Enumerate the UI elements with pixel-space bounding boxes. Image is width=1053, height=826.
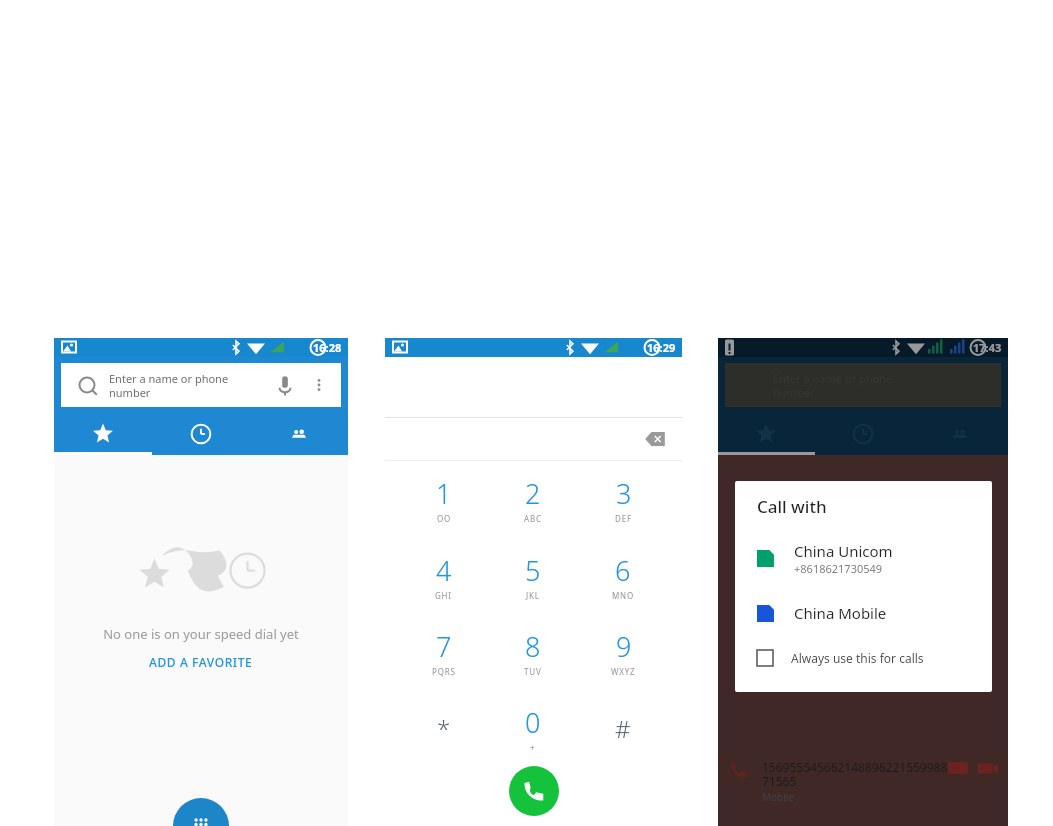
staticText: 8	[525, 628, 541, 665]
staticText: ΟO	[437, 513, 452, 524]
staticText: ADD A FAVORITE	[149, 654, 253, 670]
staticText: TUV	[524, 666, 542, 677]
staticText: ABC	[524, 513, 542, 524]
button[interactable]: 7	[399, 614, 488, 690]
button[interactable]: Contacts	[250, 413, 348, 455]
staticText: 2	[525, 475, 541, 512]
staticText: GHI	[435, 590, 452, 601]
staticText: Call with	[757, 495, 827, 518]
button[interactable]: 6	[578, 538, 668, 614]
staticText: WXYZ	[611, 666, 636, 677]
staticText: PQRS	[432, 666, 456, 677]
staticText: #	[615, 712, 631, 745]
button[interactable]: #	[578, 690, 668, 766]
staticText: 5	[525, 552, 541, 589]
staticText: 15695554566214889622155998871565	[762, 759, 948, 790]
button[interactable]: China Mobile	[735, 596, 992, 630]
button[interactable]: 1	[399, 461, 488, 538]
button[interactable]: Recents	[814, 413, 911, 455]
staticText: *	[437, 712, 451, 745]
staticText: No one is on your speed dial yet	[103, 625, 299, 643]
button[interactable]: Favorites	[718, 413, 814, 455]
staticText: DEF	[615, 513, 632, 524]
staticText: JKL	[526, 590, 540, 601]
staticText: MNO	[612, 590, 634, 601]
button[interactable]: China Unicom	[735, 534, 992, 583]
button[interactable]: ADD A FAVORITE	[141, 652, 261, 672]
staticText: 0	[525, 704, 541, 741]
staticText: 16:28	[313, 340, 342, 355]
staticText: +8618621730549	[794, 561, 883, 576]
staticText: Mobile	[762, 790, 795, 804]
staticText: Always use this for calls	[791, 650, 924, 666]
staticText: China Mobile	[794, 603, 887, 623]
button[interactable]: *	[399, 690, 488, 766]
button[interactable]: Enter a name or phone number	[61, 363, 341, 407]
staticText: 9	[616, 628, 632, 665]
button[interactable]: Open dialpad	[173, 798, 229, 826]
button[interactable]: 5	[488, 538, 578, 614]
button[interactable]: Recents	[152, 413, 250, 455]
staticText: 16:29	[647, 340, 676, 355]
staticText: 7	[436, 628, 452, 665]
button[interactable]: Call	[509, 766, 559, 816]
button[interactable]: 0	[488, 690, 578, 766]
staticText: 6	[615, 552, 631, 589]
button[interactable]: 2	[488, 461, 578, 538]
staticText: 4	[436, 552, 452, 589]
button[interactable]: Favorites	[54, 413, 152, 455]
button[interactable]: 9	[578, 614, 668, 690]
staticText: Enter a name or phone number	[109, 371, 269, 400]
button[interactable]: 3	[578, 461, 668, 538]
staticText: 1	[436, 475, 452, 512]
button[interactable]: 4	[399, 538, 488, 614]
button[interactable]: Backspace	[640, 424, 670, 454]
staticText: 17:43	[973, 340, 1002, 355]
staticText: China Unicom	[794, 541, 893, 561]
button[interactable]: Always use this for calls	[735, 644, 992, 672]
button[interactable]: 8	[488, 614, 578, 690]
staticText: 3	[616, 475, 632, 512]
staticText: +	[530, 742, 536, 753]
